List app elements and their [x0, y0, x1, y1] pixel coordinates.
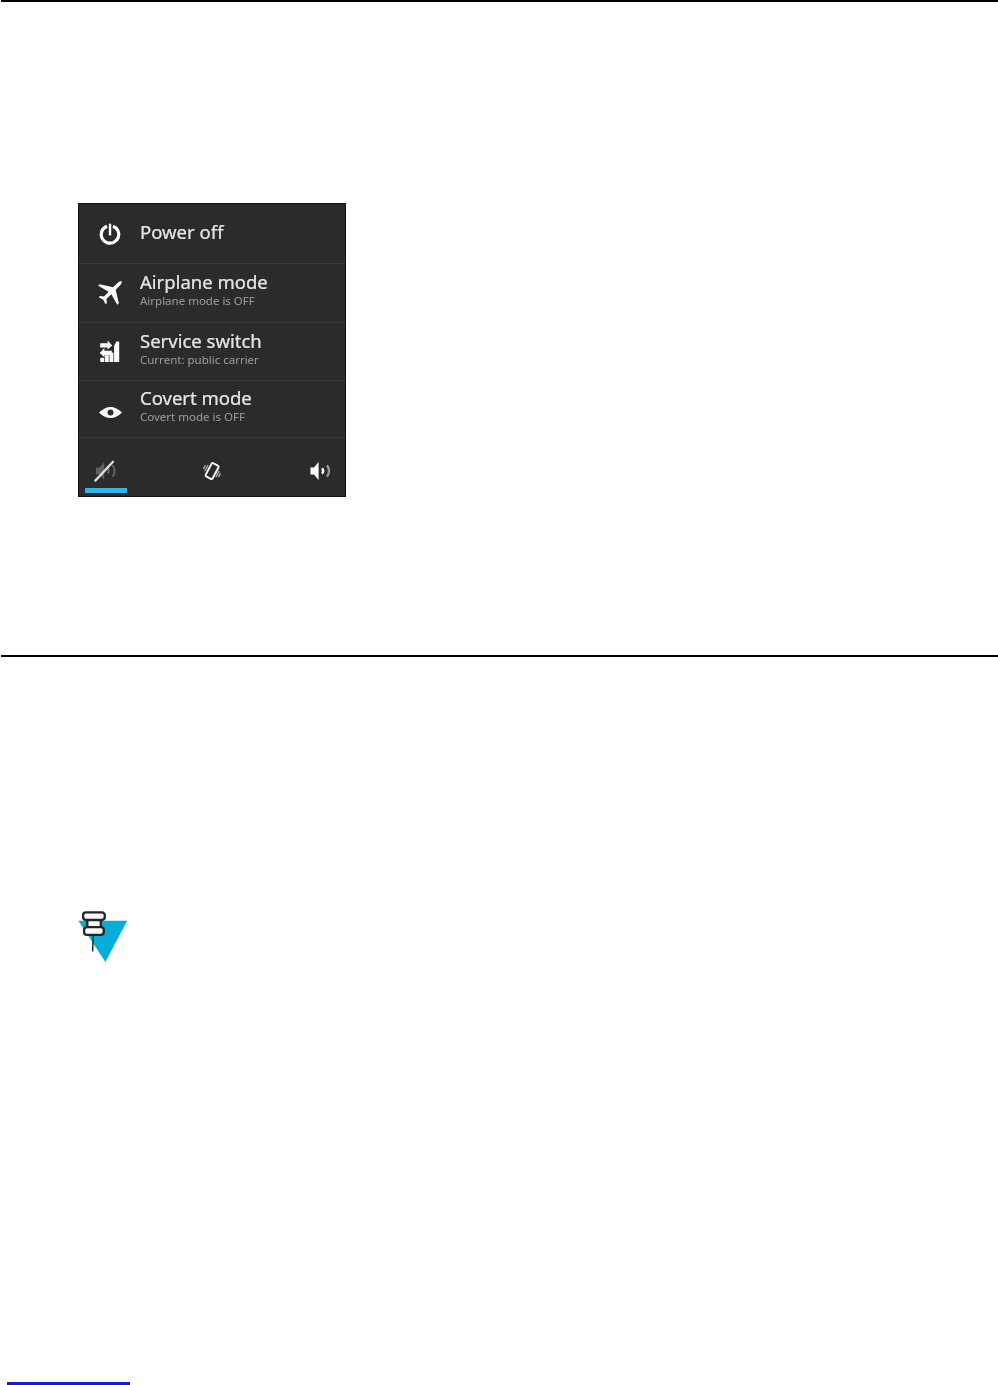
- staticText: Airplane mode is OFF: [140, 293, 255, 309]
- staticText: Airplane mode: [140, 269, 268, 294]
- staticText: Covert mode: [140, 385, 252, 410]
- staticText: Power off: [140, 219, 224, 244]
- staticText: Current: public carrier: [140, 352, 259, 368]
- staticText: Covert mode is OFF: [140, 409, 245, 425]
- button[interactable]: Silent mode: [79, 437, 159, 498]
- button[interactable]: Vibrate mode: [159, 437, 265, 498]
- button[interactable]: Sound mode: [265, 437, 347, 498]
- button[interactable]: Airplane mode: [79, 263, 345, 322]
- staticText: Service switch: [140, 328, 262, 353]
- button[interactable]: Service switch: [79, 322, 345, 380]
- button[interactable]: Power off: [79, 204, 345, 263]
- button[interactable]: Covert mode: [79, 380, 345, 437]
